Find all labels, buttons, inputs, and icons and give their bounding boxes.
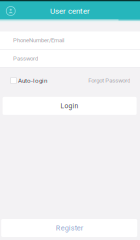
staticText: Register [56,224,83,232]
button[interactable]: Register [1,219,137,237]
button[interactable]: Login [3,97,137,115]
staticText: Login [61,102,79,110]
staticText: Auto-login [18,77,47,84]
staticText: User center [50,6,90,16]
staticText: Forgot Password [88,77,130,84]
button[interactable]: Forgot Password [88,74,130,87]
button[interactable]: Account [0,1,21,21]
button[interactable]: Auto-login [11,74,47,87]
staticText: PhoneNumber/Email [13,37,64,44]
staticText: Password [13,55,38,62]
